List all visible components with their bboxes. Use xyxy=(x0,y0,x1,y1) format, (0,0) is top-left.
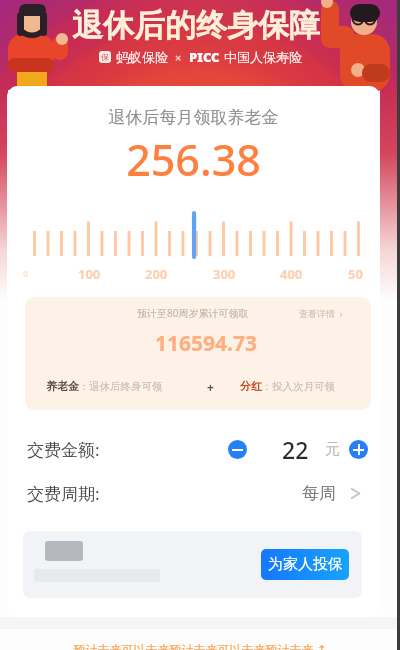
staticText: + xyxy=(207,379,214,395)
staticText: 退休后终身可领 xyxy=(89,380,163,393)
button[interactable]: 为家人投保 xyxy=(261,549,349,580)
staticText: 为家人投保 xyxy=(268,555,343,574)
staticText: ： xyxy=(262,380,272,393)
staticText: 元 xyxy=(325,440,340,459)
staticText: × xyxy=(175,50,182,65)
staticText: 200 xyxy=(145,265,168,283)
staticText: 每周 xyxy=(302,483,336,504)
button[interactable]: 保 xyxy=(99,48,302,66)
staticText: 50 xyxy=(348,265,363,283)
staticText: 预计至80周岁累计可领取 xyxy=(137,306,249,320)
staticText: 投入次月可领 xyxy=(272,380,335,393)
staticText: 256.38 xyxy=(7,130,380,189)
staticText: 22 xyxy=(282,434,309,465)
staticText: 交费周期: xyxy=(27,482,100,505)
button[interactable]: 查看详情 › xyxy=(299,307,343,319)
staticText: 0 xyxy=(23,267,29,279)
staticText: 100 xyxy=(78,265,101,283)
staticText: 交费金额: xyxy=(27,438,100,461)
staticText: 退休后的终身保障 xyxy=(72,6,320,45)
button[interactable]: 交费金额: xyxy=(7,427,380,471)
staticText: 蚂蚁保险 xyxy=(116,49,168,65)
staticText: 400 xyxy=(280,265,303,283)
staticText: 分红 xyxy=(240,379,262,393)
button[interactable]: 交费周期: xyxy=(7,471,380,515)
button[interactable]: Decrease amount xyxy=(228,440,247,459)
staticText: 保 xyxy=(101,52,109,62)
staticText: PICC xyxy=(189,48,220,66)
staticText: 预计未来可以未来预计未来可以未来预计未来 ↑ xyxy=(0,641,400,650)
staticText: 300 xyxy=(213,265,236,283)
button[interactable]: Increase amount xyxy=(349,440,368,459)
staticText: 养老金 xyxy=(46,379,79,393)
staticText: ： xyxy=(79,380,89,393)
staticText: 退休后每月领取养老金 xyxy=(7,107,380,128)
staticText: 中国人保寿险 xyxy=(224,49,302,65)
staticText: 116594.73 xyxy=(33,329,371,358)
